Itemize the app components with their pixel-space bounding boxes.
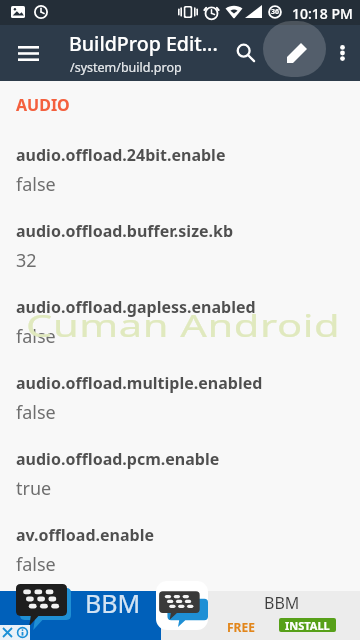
staticText: false <box>16 324 56 349</box>
button[interactable]: Edit <box>270 25 324 81</box>
staticText: av.offload.enable <box>16 524 155 546</box>
staticText: false <box>16 552 56 577</box>
staticText: true <box>16 476 52 501</box>
button[interactable]: av.offload.enable <box>0 524 360 586</box>
button[interactable]: audio.offload.gapless.enabled <box>0 296 360 358</box>
staticText: Cuman Android <box>26 304 341 346</box>
button[interactable]: audio.offload.buffer.size.kb <box>0 220 360 282</box>
staticText: BuildProp Edit... <box>69 30 218 57</box>
staticText: audio.offload.24bit.enable <box>16 144 226 166</box>
staticText: FREE <box>227 619 255 635</box>
staticText: audio.offload.multiple.enabled <box>16 372 263 394</box>
button[interactable]: Search <box>222 25 270 81</box>
staticText: audio.offload.buffer.size.kb <box>16 220 234 242</box>
button[interactable]: audio.offload.multiple.enabled <box>0 372 360 434</box>
button[interactable]: INSTALL <box>279 618 336 632</box>
staticText: 36 <box>271 7 280 17</box>
staticText: audio.offload.pcm.enable <box>16 448 220 470</box>
button[interactable]: audio.offload.24bit.enable <box>0 144 360 206</box>
staticText: audio.offload.gapless.enabled <box>16 296 256 318</box>
button[interactable]: Navigation menu <box>0 25 56 81</box>
staticText: INSTALL <box>285 618 330 632</box>
staticText: AUDIO <box>16 94 70 116</box>
staticText: BBM <box>264 592 300 614</box>
staticText: 32 <box>16 248 37 273</box>
button[interactable]: audio.offload.pcm.enable <box>0 448 360 510</box>
button[interactable]: More options <box>324 25 360 81</box>
staticText: /system/build.prop <box>70 59 182 76</box>
staticText: false <box>16 400 56 425</box>
staticText: false <box>16 172 56 197</box>
staticText: 10:18 PM <box>292 4 353 23</box>
staticText: BBM <box>85 586 141 620</box>
